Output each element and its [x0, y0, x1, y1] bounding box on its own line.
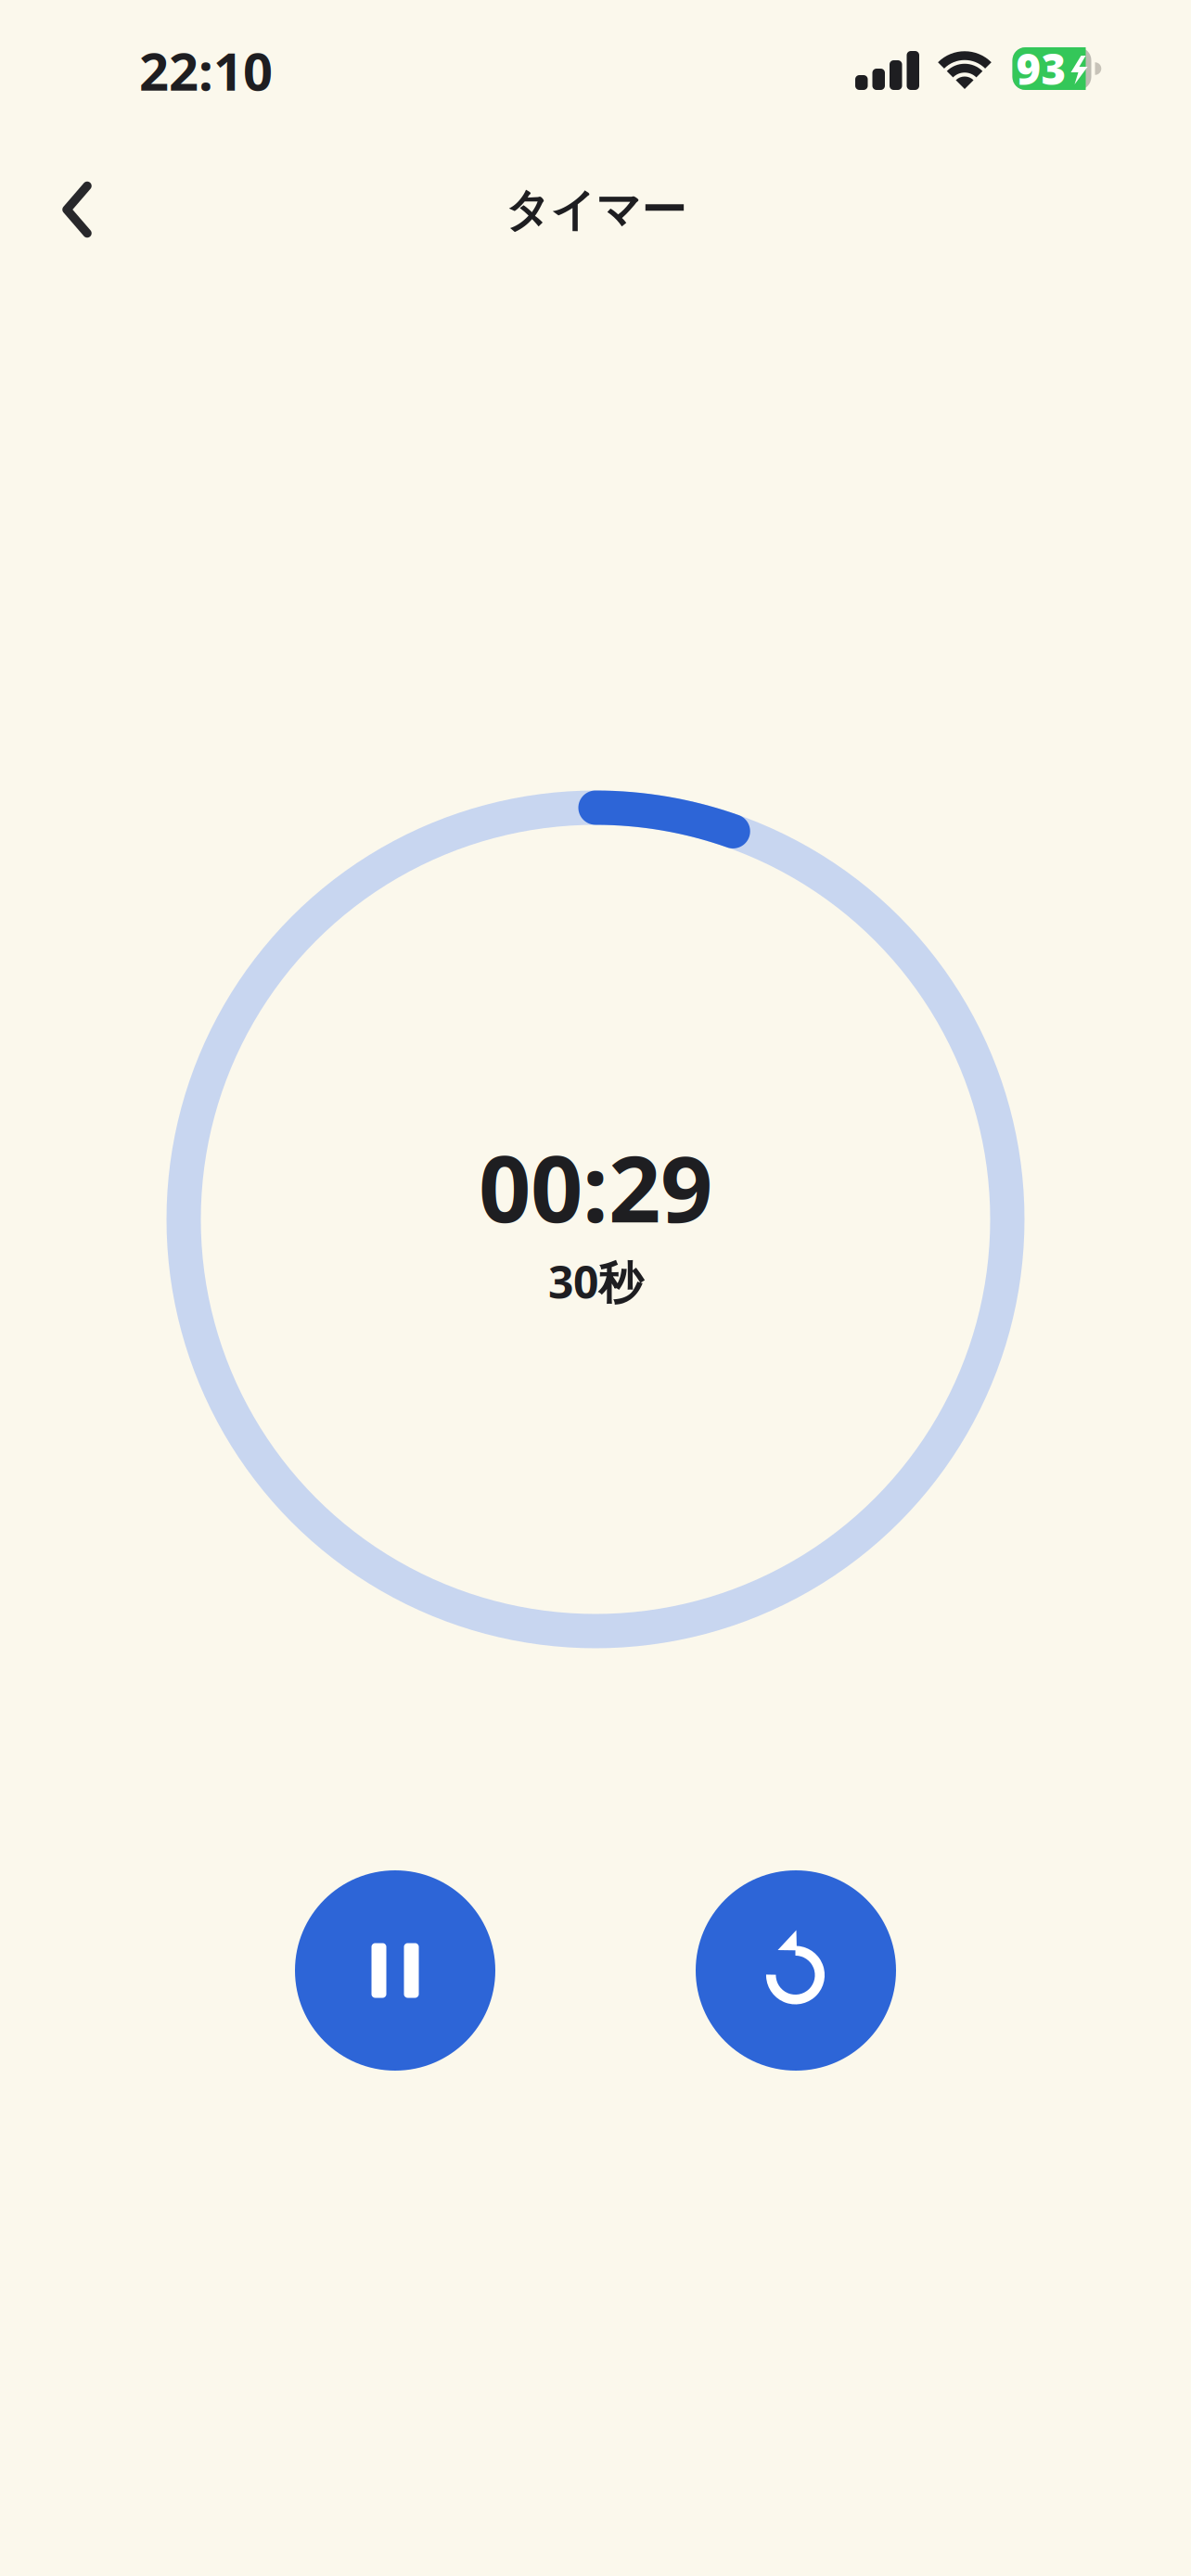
- button[interactable]: Pause: [295, 1870, 495, 2071]
- staticText: 93: [1016, 41, 1066, 97]
- staticText: 00:29: [479, 1126, 712, 1248]
- staticText: 30秒: [548, 1252, 643, 1311]
- staticText: タイマー: [505, 183, 686, 238]
- button[interactable]: Reset: [696, 1870, 896, 2071]
- button[interactable]: Back: [62, 182, 94, 237]
- staticText: 22:10: [139, 36, 273, 105]
